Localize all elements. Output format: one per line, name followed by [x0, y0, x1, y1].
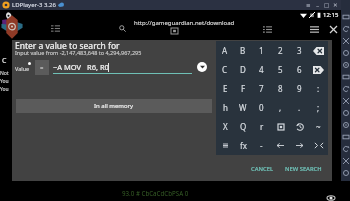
button[interactable]: Tool 14: [341, 167, 350, 179]
staticText: B: [240, 45, 246, 56]
button[interactable]: 0: [252, 98, 271, 117]
button[interactable]: HIST: [290, 117, 309, 136]
button[interactable]: C: [216, 60, 234, 79]
button[interactable]: B: [234, 41, 252, 60]
staticText: Enter a value to search for: [15, 40, 120, 52]
button[interactable]: F: [234, 79, 252, 98]
button[interactable]: Tool 11: [341, 131, 350, 143]
button[interactable]: W: [234, 98, 252, 117]
button[interactable]: =: [35, 60, 49, 75]
button[interactable]: Tool 12: [341, 143, 350, 155]
button[interactable]: Tool 1: [341, 11, 350, 23]
button[interactable]: Close: [330, 26, 337, 33]
staticText: NEW SEARCH: [285, 165, 322, 173]
button[interactable]: r: [252, 117, 271, 136]
staticText: 4: [259, 64, 264, 75]
button[interactable]: h: [216, 98, 234, 117]
button[interactable]: ;: [309, 98, 328, 117]
staticText: In all memory: [94, 102, 134, 110]
button[interactable]: Tool 8: [341, 95, 350, 107]
button[interactable]: Search: [119, 25, 126, 32]
staticText: ,: [279, 102, 282, 113]
button[interactable]: Tool 4: [341, 47, 350, 59]
button[interactable]: Tool 7: [341, 83, 350, 95]
staticText: □: [324, 2, 330, 8]
button[interactable]: D: [234, 60, 252, 79]
staticText: 93.0 # CbCaCdCbPSA 0: [122, 189, 189, 197]
button[interactable]: NEW SEARCH: [281, 163, 326, 175]
button[interactable]: -: [252, 136, 271, 155]
button[interactable]: MENU: [216, 136, 234, 155]
staticText: :: [317, 83, 320, 94]
button[interactable]: Preview: [327, 195, 335, 201]
button[interactable]: Minimise: [313, 0, 322, 10]
staticText: ~A MOV R6, R0: [53, 62, 109, 72]
button[interactable]: Tool 9: [341, 107, 350, 119]
staticText: ✕: [333, 2, 338, 8]
button[interactable]: Tool 13: [341, 155, 350, 167]
button[interactable]: Tabs: [263, 26, 272, 33]
button[interactable]: Tool 2: [341, 23, 350, 35]
staticText: W: [239, 102, 247, 113]
staticText: 9: [297, 83, 302, 94]
button[interactable]: X: [216, 117, 234, 136]
staticText: CANCEL: [251, 165, 273, 173]
staticText: Q: [240, 121, 247, 132]
button[interactable]: Tool 10: [341, 119, 350, 131]
button[interactable]: A: [216, 41, 234, 60]
staticText: You: [0, 78, 9, 85]
staticText: Not: [0, 70, 9, 77]
staticText: C: [2, 56, 7, 66]
button[interactable]: 4: [252, 60, 271, 79]
button[interactable]: E: [216, 79, 234, 98]
button[interactable]: ~: [309, 117, 328, 136]
button[interactable]: ,: [271, 98, 290, 117]
button[interactable]: fx: [234, 136, 252, 155]
staticText: Value: [15, 65, 30, 72]
button[interactable]: 2: [271, 41, 290, 60]
staticText: F: [241, 83, 246, 94]
button[interactable]: Maximise: [322, 0, 331, 10]
button[interactable]: Q: [234, 117, 252, 136]
staticText: 8: [278, 83, 283, 94]
button[interactable]: Tool 15: [341, 179, 350, 191]
button[interactable]: 8: [271, 79, 290, 98]
staticText: 3: [297, 45, 302, 56]
staticText: ~: [316, 121, 321, 132]
staticText: ≡: [306, 2, 311, 8]
staticText: 0: [259, 102, 264, 113]
button[interactable]: Menu: [51, 25, 60, 32]
button[interactable]: Tool 3: [341, 35, 350, 47]
button[interactable]: BOX: [271, 117, 290, 136]
button[interactable]: 3: [290, 41, 309, 60]
button[interactable]: 9: [290, 79, 309, 98]
button[interactable]: ARRL: [271, 136, 290, 155]
button[interactable]: BKSP: [309, 41, 328, 60]
button[interactable]: CANCEL: [247, 163, 277, 175]
button[interactable]: 7: [252, 79, 271, 98]
button[interactable]: 1: [252, 41, 271, 60]
staticText: http://gameguardian.net/download: [134, 19, 235, 27]
button[interactable]: 5: [271, 60, 290, 79]
button[interactable]: Close: [331, 0, 340, 10]
button[interactable]: Menu: [304, 0, 313, 10]
button[interactable]: 6: [290, 60, 309, 79]
button[interactable]: COLLAPSE: [309, 136, 328, 155]
button[interactable]: ARRR: [290, 136, 309, 155]
button[interactable]: :: [309, 79, 328, 98]
staticText: ;: [317, 102, 320, 113]
button[interactable]: Tool 5: [341, 59, 350, 71]
staticText: 7: [259, 83, 264, 94]
staticText: C: [222, 64, 228, 75]
button[interactable]: DEL: [309, 60, 328, 79]
button[interactable]: Tool 6: [341, 71, 350, 83]
staticText: D: [240, 64, 246, 75]
button[interactable]: .: [290, 98, 309, 117]
staticText: fx: [240, 140, 247, 151]
staticText: 12:15: [323, 11, 339, 19]
staticText: =: [40, 64, 44, 72]
button[interactable]: In all memory: [16, 99, 212, 113]
button[interactable]: More options: [197, 62, 207, 72]
button[interactable]: More: [310, 26, 319, 33]
